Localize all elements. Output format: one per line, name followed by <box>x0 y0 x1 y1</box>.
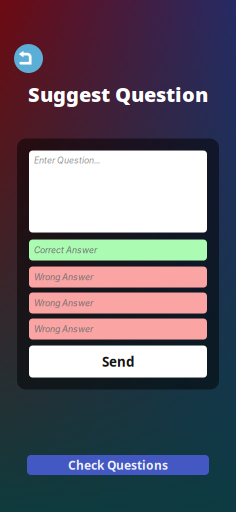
button[interactable]: Check Questions <box>27 455 209 475</box>
staticText: Wrong Answer <box>34 324 93 334</box>
staticText: Suggest Question <box>28 81 208 108</box>
staticText: Wrong Answer <box>34 298 93 308</box>
staticText: Enter Question... <box>34 155 100 166</box>
button[interactable]: Back <box>14 44 43 73</box>
staticText: Wrong Answer <box>34 272 93 282</box>
button[interactable]: Send <box>29 346 207 378</box>
staticText: Check Questions <box>68 457 168 473</box>
staticText: Correct Answer <box>34 245 97 255</box>
staticText: Send <box>102 353 134 370</box>
